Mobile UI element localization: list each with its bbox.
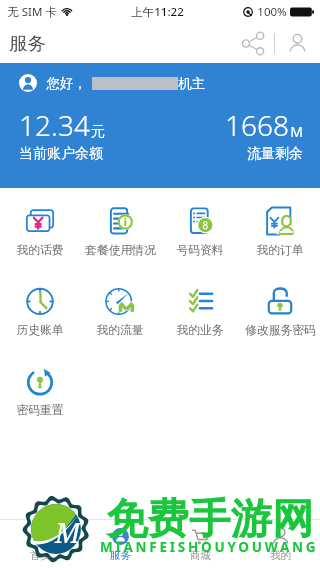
button[interactable]: 我的流量 [80, 268, 160, 348]
button[interactable]: Account [275, 23, 320, 63]
staticText: 上午11:22 [131, 4, 184, 20]
staticText: 服务 [9, 32, 46, 55]
button[interactable]: 商城 [160, 519, 240, 568]
button[interactable]: 首页 [0, 519, 80, 568]
button[interactable]: 历史账单 [0, 268, 80, 348]
staticText: 流量剩余 [247, 145, 303, 163]
staticText: 我的业务 [176, 323, 224, 338]
staticText: 修改服务密码 [245, 323, 316, 338]
staticText: 当前账户余额 [19, 145, 103, 163]
staticText: 无 SIM 卡 [7, 4, 57, 20]
button[interactable]: 我的业务 [160, 268, 240, 348]
button[interactable]: 修改服务密码 [240, 268, 320, 348]
button[interactable]: 服务 [80, 519, 160, 568]
button[interactable]: 我的话费 [0, 188, 80, 268]
staticText: MIANFEISHOUYOUWANG [100, 538, 319, 556]
staticText: 密码重置 [16, 403, 64, 418]
staticText: 100% [257, 4, 287, 20]
button[interactable]: 密码重置 [0, 348, 80, 428]
staticText: 我的 [270, 549, 291, 562]
staticText: M [55, 514, 81, 551]
staticText: 免费手游网 [106, 493, 314, 545]
button[interactable]: 套餐使用情况 [80, 188, 160, 268]
staticText: 首页 [30, 549, 51, 562]
staticText: M [290, 122, 303, 141]
staticText: 您好， [46, 75, 87, 92]
button[interactable]: 我的 [240, 519, 320, 568]
staticText: 历史账单 [16, 323, 64, 338]
staticText: 我的订单 [256, 243, 304, 258]
button[interactable]: Share [232, 23, 274, 63]
staticText: 我的话费 [16, 243, 64, 258]
button[interactable]: 我的订单 [240, 188, 320, 268]
staticText: 元 [91, 123, 105, 141]
button[interactable]: 号码资料 [160, 188, 240, 268]
staticText: 商城 [190, 549, 211, 562]
staticText: 我的流量 [96, 323, 144, 338]
staticText: 服务 [110, 549, 131, 562]
staticText: 12.34 [19, 106, 90, 144]
staticText: 号码资料 [176, 243, 224, 258]
staticText: 套餐使用情况 [85, 243, 156, 258]
staticText: 1668 [225, 106, 289, 144]
staticText: 机主 [178, 75, 205, 92]
